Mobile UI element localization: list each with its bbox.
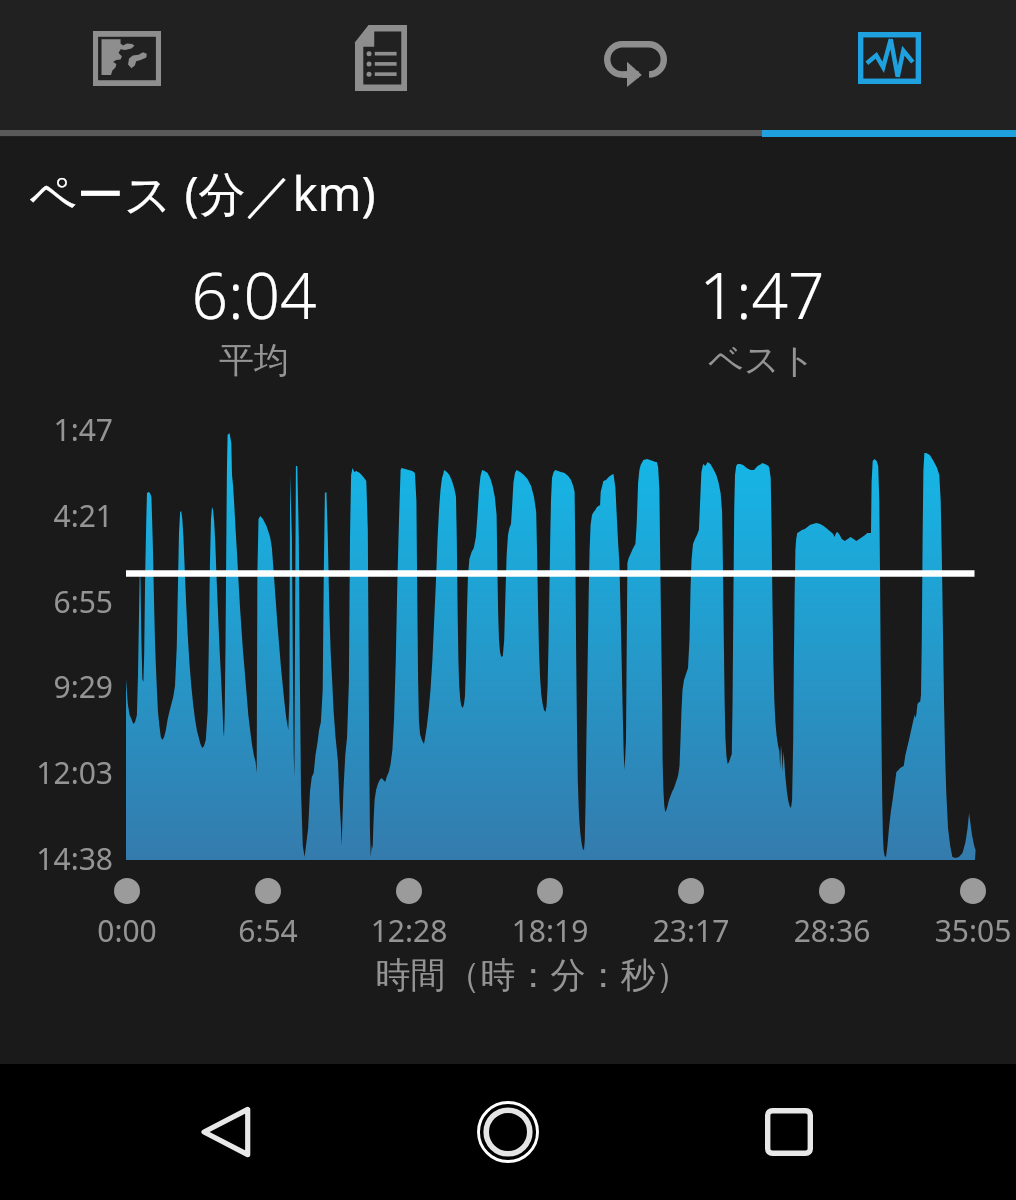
button[interactable]: Laps [508, 0, 762, 128]
staticText: ペース (分／km) [29, 161, 376, 225]
staticText: ベスト [708, 338, 816, 382]
button[interactable]: Map [0, 0, 254, 128]
button[interactable]: Charts [762, 0, 1016, 128]
button[interactable]: Details [254, 0, 508, 128]
button[interactable]: Recents [721, 1064, 857, 1200]
staticText: 1:47 [699, 251, 825, 338]
staticText: 4:21 [0, 495, 113, 536]
staticText: 6:54 [188, 910, 348, 951]
button[interactable]: Back [161, 1064, 297, 1200]
button[interactable]: Home [440, 1064, 576, 1200]
staticText: 23:17 [611, 910, 771, 951]
staticText: 18:19 [470, 910, 630, 951]
staticText: 平均 [219, 338, 289, 382]
staticText: 6:55 [0, 581, 113, 622]
staticText: 12:28 [329, 910, 489, 951]
staticText: 0:00 [47, 910, 207, 951]
staticText: 14:38 [0, 838, 113, 879]
staticText: 12:03 [0, 752, 113, 793]
staticText: 9:29 [0, 666, 113, 707]
staticText: 時間（時：分：秒） [25, 953, 1016, 997]
staticText: 35:05 [893, 910, 1016, 951]
staticText: 1:47 [0, 409, 113, 450]
staticText: 28:36 [752, 910, 912, 951]
staticText: 6:04 [191, 251, 317, 338]
